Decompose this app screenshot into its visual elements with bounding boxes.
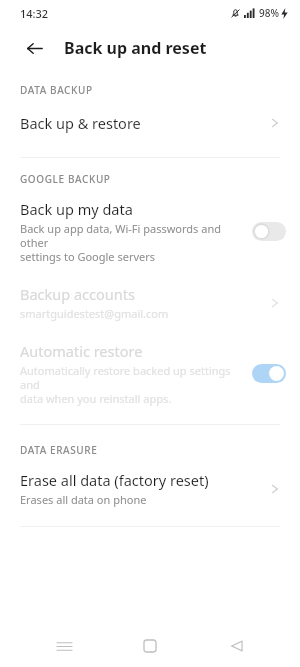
staticText: DATA BACKUP: [20, 83, 93, 97]
button[interactable]: Back: [214, 625, 260, 667]
staticText: Erase all data (factory reset): [20, 470, 209, 490]
staticText: smartguidestest@gmail.com: [20, 306, 169, 321]
staticText: 98%: [259, 6, 279, 20]
button[interactable]: Back up & restore: [0, 107, 300, 139]
staticText: Erases all data on phone: [20, 492, 147, 507]
staticText: Backup accounts: [20, 284, 135, 304]
staticText: GOOGLE BACKUP: [20, 172, 111, 186]
staticText: Back up & restore: [20, 113, 270, 133]
button[interactable]: Toggle on: [252, 364, 286, 383]
staticText: DATA ERASURE: [20, 443, 98, 457]
button[interactable]: Home: [127, 625, 173, 667]
staticText: 14:32: [20, 6, 49, 21]
staticText: Automatic restore: [20, 341, 143, 361]
button[interactable]: Automatic restore: [0, 338, 300, 409]
button[interactable]: Toggle off: [252, 222, 286, 241]
staticText: Back up and reset: [64, 37, 207, 59]
staticText: Automatically restore backed up settings…: [20, 363, 242, 406]
button[interactable]: Back up my data: [0, 196, 300, 267]
button[interactable]: Recent apps: [41, 625, 87, 667]
staticText: Back up app data, Wi-Fi passwords and ot…: [20, 221, 242, 264]
staticText: Back up my data: [20, 199, 133, 219]
button[interactable]: Back: [18, 32, 50, 64]
button[interactable]: Erase all data (factory reset): [0, 467, 300, 510]
button[interactable]: Backup accounts: [0, 281, 300, 324]
